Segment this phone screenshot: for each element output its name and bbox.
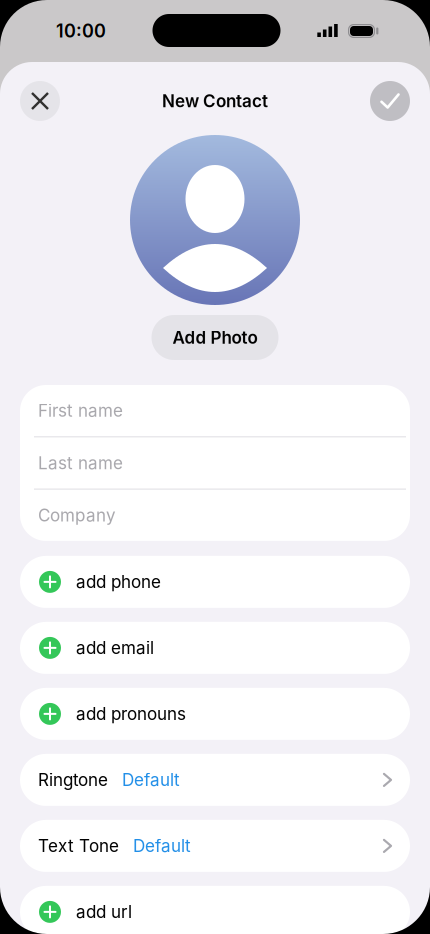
staticText: Default: [133, 836, 191, 856]
button[interactable]: add phone: [20, 556, 410, 608]
button[interactable]: Text Tone: [20, 820, 410, 872]
staticText: Last name: [38, 453, 123, 473]
button[interactable]: add email: [20, 622, 410, 674]
staticText: add email: [76, 638, 154, 658]
button[interactable]: Company: [20, 490, 410, 541]
button[interactable]: add url: [20, 886, 410, 934]
staticText: add url: [76, 902, 132, 922]
staticText: Add Photo: [172, 327, 257, 348]
button[interactable]: First name: [20, 385, 410, 436]
button[interactable]: add pronouns: [20, 688, 410, 740]
staticText: Text Tone: [38, 836, 119, 856]
button[interactable]: Last name: [20, 437, 410, 489]
staticText: Company: [38, 505, 116, 526]
button[interactable]: Add Photo: [151, 315, 278, 360]
staticText: Ringtone: [38, 770, 108, 790]
button[interactable]: Add Photo: [130, 135, 300, 305]
staticText: add phone: [76, 572, 161, 592]
staticText: 10:00: [56, 20, 106, 42]
button[interactable]: Done: [370, 81, 410, 121]
button[interactable]: Cancel: [20, 81, 60, 121]
staticText: First name: [38, 400, 123, 421]
staticText: Default: [122, 770, 180, 790]
staticText: add pronouns: [76, 704, 186, 724]
staticText: New Contact: [162, 91, 268, 111]
button[interactable]: Ringtone: [20, 754, 410, 806]
